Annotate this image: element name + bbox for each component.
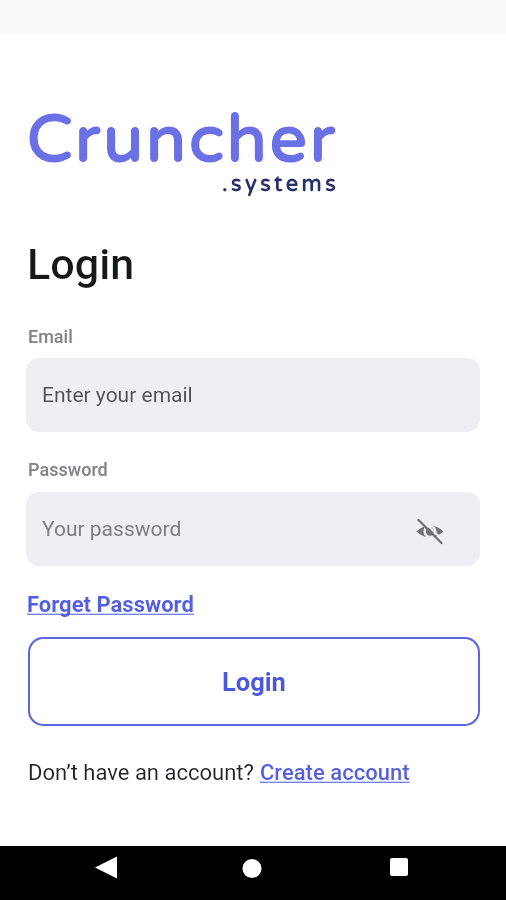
staticText: Login (222, 667, 286, 697)
button[interactable] (88, 851, 122, 885)
staticText: Don’t have an account? (28, 760, 260, 786)
button[interactable]: Enter your email (26, 358, 480, 432)
staticText: Login (27, 239, 135, 289)
button[interactable] (413, 514, 447, 548)
staticText: Your password (42, 517, 182, 542)
button[interactable]: Your password (26, 492, 480, 566)
staticText: Email (28, 326, 73, 347)
button[interactable] (235, 851, 269, 885)
staticText: Cruncher (27, 101, 338, 180)
staticText: Password (28, 459, 108, 480)
button[interactable]: Create account (260, 760, 410, 786)
staticText: Enter your email (42, 383, 193, 408)
staticText: .systems (222, 171, 340, 197)
button[interactable]: Login (28, 637, 480, 726)
button[interactable]: Forget Password (27, 592, 194, 618)
button[interactable] (382, 850, 416, 884)
